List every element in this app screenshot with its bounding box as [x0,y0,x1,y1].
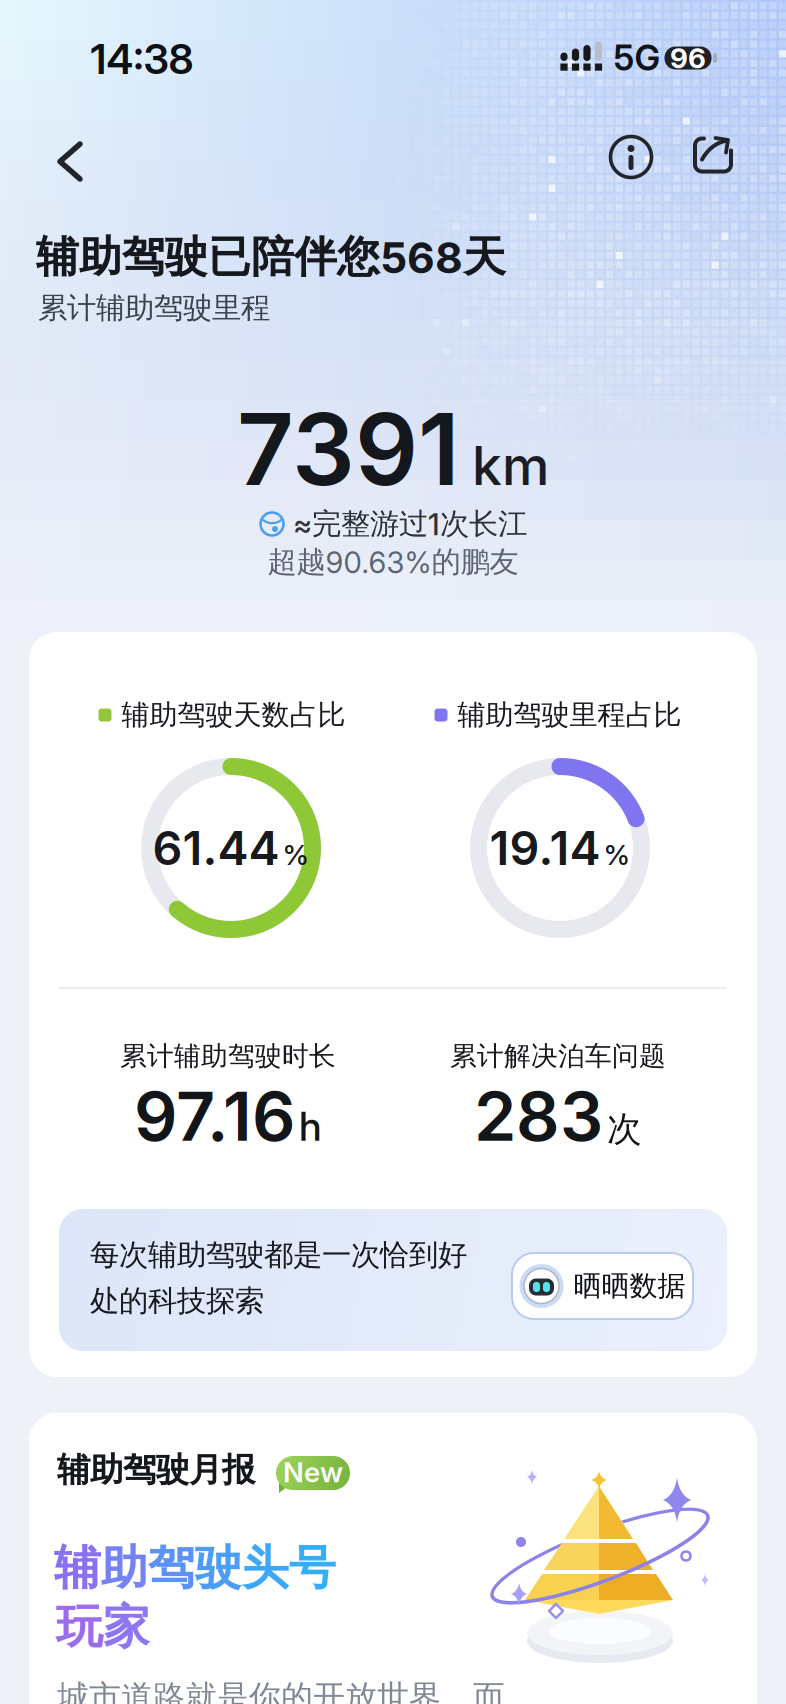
staticText: 号 [289,1539,336,1597]
staticText: 累计解决泊车问题 [450,1040,666,1072]
staticText: 超越90.63%的鹏友 [267,544,518,580]
staticText: 头 [242,1539,289,1597]
staticText: 辅助驾驶月报 [57,1449,255,1490]
staticText: ≈完整游过1次长江 [293,506,527,542]
staticText: km [472,434,549,497]
staticText: 驶 [195,1539,242,1597]
staticText: 城市道路就是你的开放世界，而 [57,1677,505,1704]
staticText: 助 [101,1539,148,1597]
staticText: 97.16 [134,1076,295,1156]
staticText: 玩 [56,1598,103,1656]
staticText: 晒晒数据 [573,1269,685,1303]
button[interactable]: 辅助驾驶月报 [29,1413,757,1704]
staticText: % [603,838,630,871]
staticText: 家 [103,1598,150,1656]
button[interactable]: Back [48,139,92,183]
staticText: 辅助驾驶天数占比 [121,698,345,732]
staticText: % [282,838,309,871]
staticText: 5G [613,38,660,78]
staticText: 辅助驾驶里程占比 [457,698,681,732]
staticText: 辅助驾驶已陪伴您568天 [36,231,506,283]
staticText: 96 [670,41,706,74]
staticText: 累计辅助驾驶时长 [120,1040,336,1072]
button[interactable]: 晒晒数据 [512,1253,693,1319]
staticText: 61.44 [152,820,279,876]
staticText: 累计辅助驾驶里程 [38,290,270,326]
staticText: 283 [474,1076,603,1156]
staticText: 辅 [54,1539,101,1597]
staticText: 每次辅助驾驶都是一次恰到好 [90,1237,467,1273]
staticText: 14:38 [90,35,193,83]
staticText: h [299,1103,322,1150]
button[interactable]: Share [691,135,735,179]
button[interactable]: Info [609,135,653,179]
staticText: 处的科技探索 [90,1283,264,1319]
staticText: 次 [607,1108,642,1150]
staticText: 驾 [148,1539,195,1597]
staticText: 7391 [237,391,460,507]
staticText: New [283,1455,343,1488]
staticText: 19.14 [489,820,600,876]
